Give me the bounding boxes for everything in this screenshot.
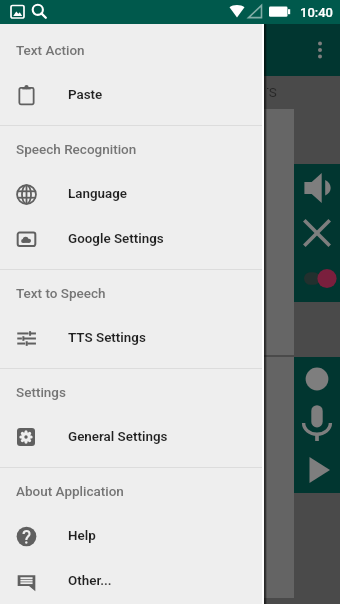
staticText: Text to Speech — [16, 285, 106, 301]
button[interactable]: Language — [0, 171, 262, 216]
button[interactable]: More options — [300, 24, 340, 76]
button[interactable]: TTS Settings — [0, 315, 262, 360]
button[interactable]: Other... — [0, 558, 262, 603]
button[interactable]: Playback controls — [294, 164, 340, 302]
staticText: About Application — [16, 483, 124, 499]
staticText: SPEECH RESULTS — [267, 84, 277, 100]
staticText: Other... — [68, 573, 112, 589]
staticText: General Settings — [68, 429, 168, 445]
staticText: Language — [68, 186, 128, 202]
button[interactable]: General Settings — [0, 414, 262, 459]
staticText: Paste — [68, 87, 103, 103]
staticText: Help — [68, 528, 96, 544]
staticText: Speech — [72, 39, 136, 61]
staticText: Google Settings — [68, 231, 164, 247]
staticText: Text Action — [16, 42, 85, 58]
staticText: Settings — [16, 384, 66, 400]
staticText: TTS Settings — [68, 330, 146, 346]
button[interactable]: Paste — [0, 72, 262, 117]
button[interactable]: Google Settings — [0, 216, 262, 261]
staticText: 10:40 — [300, 5, 333, 20]
staticText: Speech Recognition — [16, 141, 137, 157]
button[interactable]: Record controls — [294, 357, 340, 493]
button[interactable]: Help — [0, 513, 262, 558]
